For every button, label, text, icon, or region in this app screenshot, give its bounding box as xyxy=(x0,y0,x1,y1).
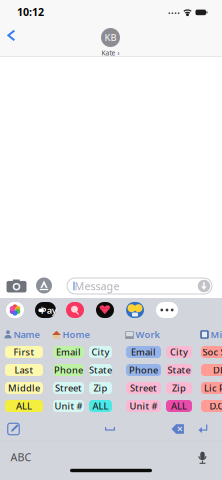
button[interactable]: Lic Plate xyxy=(201,382,222,394)
button[interactable]: Middle xyxy=(5,382,43,394)
button[interactable]: Last xyxy=(5,364,43,376)
staticText: Zip xyxy=(93,382,107,394)
staticText: Email xyxy=(56,346,81,358)
button[interactable]: Back xyxy=(0,23,22,47)
staticText: Pay xyxy=(41,304,57,316)
staticText: Misc xyxy=(210,328,222,341)
button[interactable]: Street xyxy=(53,382,84,394)
button[interactable]: Street xyxy=(126,382,161,394)
staticText: State xyxy=(89,364,112,376)
staticText: Home xyxy=(62,328,89,341)
button[interactable]: ALL xyxy=(166,400,192,412)
staticText: Zip xyxy=(172,382,186,394)
staticText: Kate › xyxy=(101,49,119,57)
staticText: First xyxy=(13,346,34,358)
staticText: ALL xyxy=(92,400,108,412)
button[interactable]: Delete xyxy=(169,421,187,437)
staticText: ALL xyxy=(16,400,32,412)
button[interactable]: Zip xyxy=(166,382,192,394)
button[interactable]: City xyxy=(166,346,192,358)
staticText: Street xyxy=(55,382,82,394)
button[interactable]: Unit # xyxy=(53,400,84,412)
staticText: Middle xyxy=(8,382,40,394)
button[interactable]: Return xyxy=(195,421,211,437)
button[interactable]: Dictate xyxy=(198,451,207,464)
button[interactable]: ABC xyxy=(8,450,34,464)
button[interactable]: Phone xyxy=(53,364,84,376)
button[interactable]: Camera xyxy=(6,278,26,292)
button[interactable]: Email xyxy=(53,346,84,358)
button[interactable]: Photos xyxy=(6,302,24,318)
button[interactable]: First xyxy=(5,346,43,358)
staticText: ALL xyxy=(171,400,187,412)
staticText: D.O.B. xyxy=(209,400,222,412)
button[interactable]: Message xyxy=(67,278,213,294)
button[interactable]: KB xyxy=(97,28,123,57)
button[interactable]: State xyxy=(89,364,112,376)
staticText: City xyxy=(170,346,188,358)
staticText: 10:12 xyxy=(17,5,44,19)
staticText: Last xyxy=(14,364,33,376)
button[interactable]: App xyxy=(66,302,84,318)
button[interactable]: Zip xyxy=(89,382,112,394)
button[interactable]: Unit # xyxy=(126,400,161,412)
staticText: Unit # xyxy=(54,400,82,412)
button[interactable]: More apps xyxy=(156,302,178,318)
staticText: Phone xyxy=(54,364,83,376)
staticText: State xyxy=(167,364,190,376)
staticText: Email xyxy=(131,346,156,358)
button[interactable]: App xyxy=(96,302,114,318)
button[interactable]: ALL xyxy=(5,400,43,412)
staticText: Lic Plate xyxy=(204,382,222,394)
button[interactable]: Apple Pay xyxy=(35,302,56,318)
staticText: Name xyxy=(13,328,39,341)
button[interactable]: App Store xyxy=(36,277,52,293)
staticText: Message xyxy=(74,279,119,293)
button[interactable]: D.O.B. xyxy=(201,400,222,412)
button[interactable]: City xyxy=(89,346,112,358)
staticText: Phone xyxy=(129,364,158,376)
staticText: ABC xyxy=(10,450,31,464)
staticText: Street xyxy=(130,382,157,394)
button[interactable]: ALL xyxy=(89,400,112,412)
staticText: City xyxy=(91,346,109,358)
staticText: DL # xyxy=(213,364,222,376)
button[interactable]: State xyxy=(166,364,192,376)
staticText: Soc Sec # xyxy=(202,346,222,358)
staticText: Work xyxy=(135,328,159,341)
button[interactable]: Email xyxy=(126,346,161,358)
button[interactable]: Phone xyxy=(126,364,161,376)
button[interactable]: App xyxy=(126,302,144,318)
button[interactable]: DL # xyxy=(201,364,222,376)
staticText: KB xyxy=(104,31,116,44)
button[interactable]: Compose xyxy=(4,420,22,438)
staticText: Unit # xyxy=(129,400,157,412)
button[interactable]: Soc Sec # xyxy=(201,346,222,358)
